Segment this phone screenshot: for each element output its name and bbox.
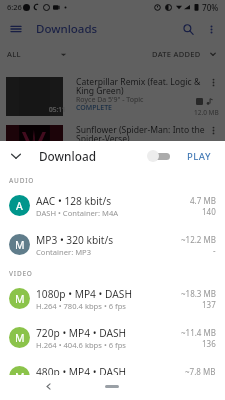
staticText: 70% (202, 2, 219, 13)
staticText: PLAY (187, 150, 212, 163)
staticText: 02:38 (49, 153, 66, 162)
staticText: 12.0 MB (194, 108, 219, 117)
staticText: M (15, 238, 25, 252)
button[interactable]: PLAY (184, 145, 215, 168)
button[interactable]: M (0, 318, 225, 357)
staticText: Downloads (36, 21, 98, 37)
staticText: AUDIO (9, 176, 35, 185)
button[interactable]: M (0, 225, 225, 264)
staticText: A (16, 199, 23, 213)
staticText: ~11.4 MB (181, 327, 216, 338)
button[interactable]: Navigation menu (8, 21, 24, 37)
staticText: Spider-Verse) (76, 133, 130, 145)
staticText: M (15, 292, 25, 306)
staticText: H.264 • 250.1 kbps • 6 fps (36, 379, 126, 389)
staticText: 136 (202, 338, 216, 349)
button[interactable]: 05:11 (0, 77, 225, 121)
staticText: H.264 • 780.4 kbps • 6 fps (36, 301, 126, 311)
staticText: 480p • MP4 • DASH (36, 365, 127, 379)
staticText: 05:11 (49, 105, 66, 114)
staticText: AAC • 128 kbit/s (36, 194, 112, 208)
staticText: M (15, 331, 25, 345)
staticText: King Green) (76, 85, 124, 97)
staticText: 720p • MP4 • DASH (36, 326, 127, 340)
staticText: 6:26 (7, 2, 22, 12)
staticText: ~12.2 MB (181, 234, 216, 245)
button[interactable]: Collapse (8, 148, 24, 164)
staticText: 140 (202, 206, 216, 217)
staticText: Sunflower (Spider-Man: Into the (76, 124, 205, 136)
button[interactable]: Home (98, 378, 126, 394)
button[interactable]: M (0, 357, 225, 396)
staticText: Post Malone (76, 143, 117, 153)
staticText: - (213, 245, 216, 256)
staticText: ~7.8 MB (185, 366, 216, 377)
staticText: VIDEO (9, 269, 33, 278)
staticText: 4.7 MB (190, 195, 216, 206)
staticText: H.264 • 404.6 kbps • 6 fps (36, 340, 126, 350)
button[interactable]: Item options (207, 76, 220, 89)
button[interactable]: 02:38 (0, 125, 225, 169)
staticText: Caterpillar Remix (feat. Logic & (76, 76, 201, 88)
staticText: COMPLETE (76, 103, 112, 113)
button[interactable]: A (0, 186, 225, 225)
staticText: M (15, 370, 25, 384)
staticText: 1080p • MP4 • DASH (36, 287, 132, 301)
button[interactable]: M (0, 279, 225, 318)
button[interactable]: Search (178, 19, 198, 39)
staticText: MP3 • 320 kbit/s (36, 233, 114, 247)
staticText: DATE ADDED (152, 49, 201, 59)
staticText: Royce Da 5'9" - Topic (76, 95, 144, 105)
button[interactable]: ALL (7, 49, 67, 59)
button[interactable]: Back (40, 378, 56, 394)
button[interactable]: Item options (207, 124, 220, 137)
staticText: ~18.3 MB (181, 288, 216, 299)
staticText: Download (39, 148, 96, 164)
staticText: DASH • Container: M4A (36, 208, 119, 218)
staticText: Container: MP3 (36, 247, 91, 257)
button[interactable]: More options (201, 19, 221, 39)
staticText: 6.4 MB (194, 156, 215, 165)
staticText: COMPLETE (76, 151, 112, 161)
staticText: ALL (7, 49, 21, 59)
button[interactable]: DATE ADDED (152, 49, 217, 59)
button[interactable]: Toggle download (147, 147, 170, 165)
staticText: 137 (202, 299, 216, 310)
